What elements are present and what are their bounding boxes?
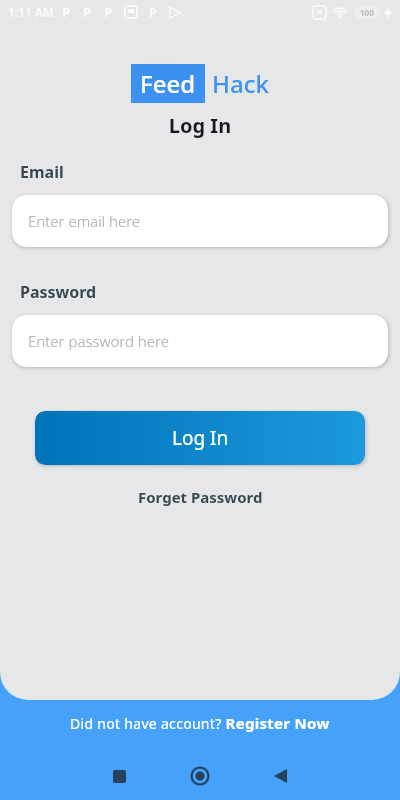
staticText: P: [104, 3, 113, 21]
staticText: 100: [360, 7, 374, 18]
staticText: P: [62, 3, 71, 21]
staticText: Enter password here: [28, 331, 169, 351]
button[interactable]: Log In: [35, 411, 365, 465]
staticText: Log In: [0, 112, 400, 139]
button[interactable]: Enter email here: [12, 195, 388, 247]
staticText: Hack: [212, 67, 269, 100]
staticText: Feed: [140, 67, 196, 100]
staticText: Email: [20, 161, 64, 183]
staticText: Log In: [172, 425, 229, 451]
button[interactable]: Forget Password: [132, 481, 269, 513]
button[interactable]: Enter password here: [12, 315, 388, 367]
button[interactable]: Did not have account? Register Now: [0, 713, 400, 733]
button[interactable]: [103, 760, 136, 793]
staticText: 1:11 AM: [8, 4, 54, 20]
staticText: Forget Password: [138, 487, 263, 507]
staticText: P: [149, 4, 157, 20]
staticText: P: [83, 3, 92, 21]
button[interactable]: [264, 759, 297, 793]
staticText: Password: [20, 281, 97, 303]
staticText: Did not have account? Register Now: [70, 713, 330, 733]
button[interactable]: [183, 759, 217, 793]
staticText: Enter email here: [28, 211, 141, 231]
